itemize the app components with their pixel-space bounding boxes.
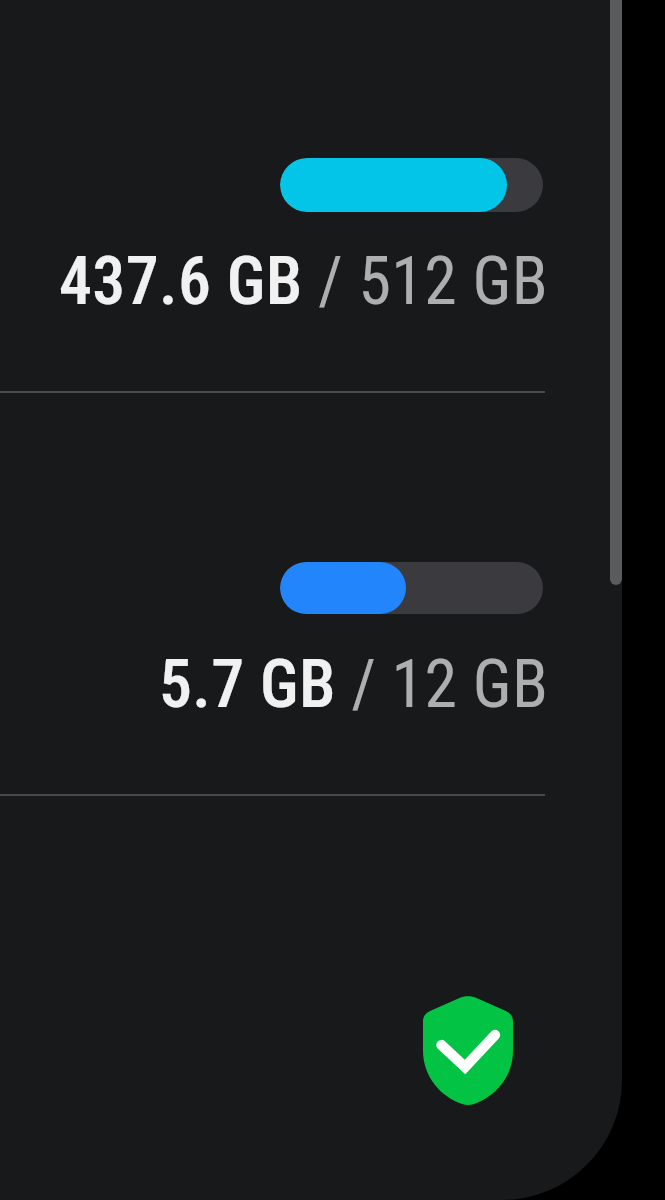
button[interactable]: Storage 437.6 GB of 512 GB used — [0, 0, 622, 1200]
button[interactable]: Memory 5.7 GB of 12 GB used — [0, 0, 622, 1200]
button[interactable]: Device protection status — [423, 996, 513, 1105]
staticText: 5.7 GB / 12 GB — [159, 646, 549, 723]
staticText: 437.6 GB / 512 GB — [59, 243, 549, 320]
